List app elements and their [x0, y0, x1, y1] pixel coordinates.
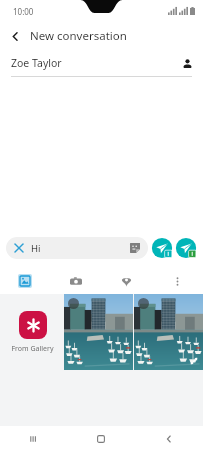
button[interactable]: Home	[67, 426, 135, 452]
button[interactable]: Back	[0, 22, 30, 50]
button[interactable]: From Gallery	[0, 294, 64, 370]
staticText: New conversation	[30, 28, 127, 44]
button[interactable]: Photo of harbour with boats	[64, 294, 133, 370]
button[interactable]: Expand photo	[188, 355, 200, 367]
button[interactable]: Select photo	[138, 298, 149, 309]
button[interactable]: Stickers	[125, 238, 145, 258]
button[interactable]: Clear text	[11, 240, 27, 256]
button[interactable]: Select photo	[68, 298, 79, 309]
button[interactable]: Back	[135, 426, 203, 452]
staticText: Zoe Taylor	[11, 56, 175, 70]
button[interactable]: Send message SIM 2	[175, 237, 197, 259]
button[interactable]: Add recipient	[175, 50, 199, 76]
button[interactable]: Location	[101, 268, 152, 294]
button[interactable]: Recent apps	[0, 426, 67, 452]
staticText: 10:00	[13, 6, 34, 17]
button[interactable]: More options	[152, 268, 203, 294]
staticText: From Gallery	[11, 344, 54, 354]
button[interactable]: Gallery	[0, 268, 50, 294]
button[interactable]: Clear text	[6, 237, 148, 259]
button[interactable]: Send message SIM 1	[151, 237, 173, 259]
button[interactable]: Zoe Taylor	[0, 50, 203, 76]
staticText: Hi	[31, 242, 125, 255]
button[interactable]: Photo of harbour with boats	[134, 294, 203, 370]
button[interactable]: Camera	[50, 268, 101, 294]
